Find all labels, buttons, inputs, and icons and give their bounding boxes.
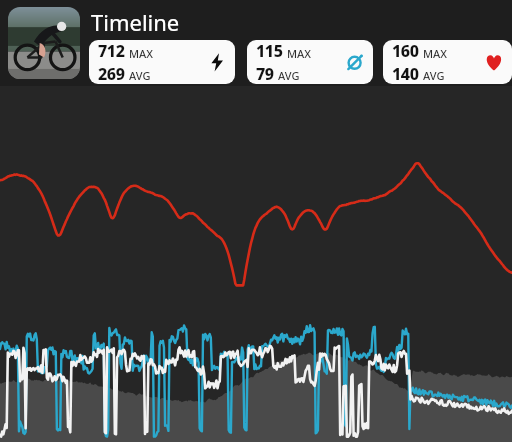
staticText: MAX — [287, 46, 312, 61]
staticText: AVG — [129, 68, 151, 83]
button[interactable]: 712 — [89, 40, 235, 84]
staticText: MAX — [129, 46, 154, 61]
staticText: 140 — [392, 63, 419, 84]
staticText: 160 — [392, 40, 419, 62]
staticText: 79 — [256, 63, 274, 84]
button[interactable]: Ride photo — [8, 7, 80, 79]
other: Cadence — [345, 52, 365, 72]
staticText: 115 — [256, 40, 283, 62]
other: Power — [207, 52, 227, 72]
staticText: MAX — [423, 46, 448, 61]
staticText: 269 — [98, 63, 125, 84]
other: Heart rate — [484, 52, 504, 72]
button[interactable]: 115 — [247, 40, 373, 84]
staticText: AVG — [278, 68, 300, 83]
button[interactable]: Activity timeline chart — [0, 86, 512, 442]
staticText: 712 — [98, 40, 125, 62]
staticText: AVG — [423, 68, 445, 83]
button[interactable]: 160 — [383, 40, 512, 84]
staticText: Timeline — [91, 7, 180, 37]
